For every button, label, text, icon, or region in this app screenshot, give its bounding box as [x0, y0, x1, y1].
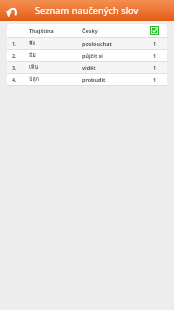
button[interactable]: 1. — [7, 38, 167, 49]
staticText: ปลุก — [29, 75, 82, 84]
staticText: 1 — [150, 52, 159, 59]
staticText: ฟัง — [29, 39, 82, 48]
staticText: 2. — [12, 52, 29, 59]
staticText: 1. — [12, 40, 29, 47]
staticText: Seznam naučených slov — [35, 4, 139, 17]
staticText: 1 — [150, 40, 159, 47]
button[interactable]: 2. — [7, 50, 167, 61]
staticText: probudit — [82, 76, 150, 83]
staticText: ยืม — [29, 51, 82, 60]
button[interactable]: 3. — [7, 62, 167, 73]
staticText: เห็น — [29, 63, 82, 72]
staticText: vidět — [82, 64, 150, 71]
staticText: Thajština — [29, 27, 82, 34]
button[interactable]: Select all — [150, 26, 159, 35]
staticText: 1 — [150, 64, 159, 71]
button[interactable]: 4. — [7, 74, 167, 85]
staticText: Česky — [82, 27, 150, 34]
staticText: 3. — [12, 64, 29, 71]
button[interactable]: Back — [0, 0, 24, 21]
staticText: 4. — [12, 76, 29, 83]
staticText: 1 — [150, 76, 159, 83]
staticText: půjčit si — [82, 52, 150, 59]
staticText: poslouchat — [82, 40, 150, 47]
